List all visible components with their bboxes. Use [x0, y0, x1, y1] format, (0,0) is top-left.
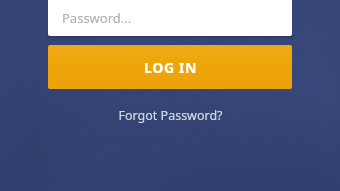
staticText: Password...	[62, 9, 132, 27]
button[interactable]: Password...	[48, 0, 292, 36]
staticText: LOG IN	[144, 58, 197, 77]
button[interactable]: LOG IN	[48, 45, 292, 89]
button[interactable]: Forgot Password?	[104, 104, 236, 126]
staticText: Forgot Password?	[118, 107, 223, 124]
